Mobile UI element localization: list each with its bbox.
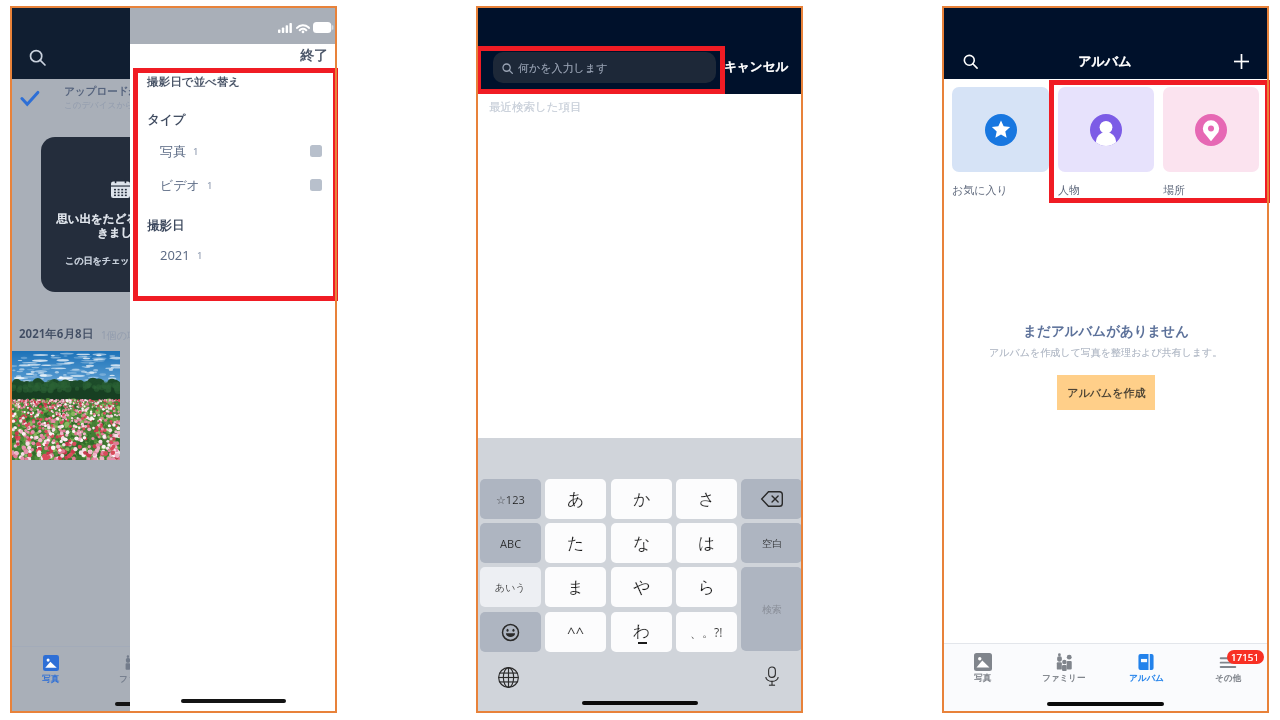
button[interactable]: な xyxy=(611,523,672,563)
button[interactable]: Search xyxy=(958,49,982,73)
staticText: は xyxy=(698,533,716,554)
button[interactable]: 場所 xyxy=(1163,87,1259,197)
staticText: タイプ xyxy=(147,112,186,128)
staticText: アップロードが完 xyxy=(64,85,150,98)
button[interactable]: か xyxy=(611,479,672,519)
button[interactable]: 空白 xyxy=(741,523,802,563)
button[interactable]: ま xyxy=(545,567,606,607)
button[interactable]: 写真 xyxy=(10,650,91,692)
button[interactable]: Backspace xyxy=(741,479,802,519)
button[interactable]: ^^ xyxy=(545,612,606,652)
staticText: 終了 xyxy=(300,47,328,65)
button[interactable]: アルバム xyxy=(1105,644,1187,689)
other: Emoji xyxy=(502,624,519,641)
button[interactable]: アルバムを作成 xyxy=(1057,375,1155,410)
button[interactable]: ファミ xyxy=(91,650,173,692)
staticText: 2021年6月8日 xyxy=(19,326,93,342)
button[interactable]: 2021 xyxy=(130,244,337,266)
button[interactable]: ビデオ xyxy=(130,174,337,196)
staticText: 写真 xyxy=(974,673,991,684)
staticText: 写真 xyxy=(160,143,186,159)
button[interactable]: 何かを入力します xyxy=(493,52,716,83)
staticText: ま xyxy=(567,577,585,598)
staticText: この日をチェックしてみま xyxy=(65,255,176,266)
button[interactable]: Photo of a cosmos flower field xyxy=(12,351,120,460)
staticText: 検索 xyxy=(762,603,782,616)
button[interactable]: さ xyxy=(676,479,737,519)
staticText: ABC xyxy=(500,536,522,551)
staticText: ^^ xyxy=(567,622,585,642)
staticText: か xyxy=(633,489,651,510)
staticText: きました xyxy=(97,226,145,240)
staticText: さ xyxy=(698,489,716,510)
button[interactable]: ら xyxy=(676,567,737,607)
button[interactable]: た xyxy=(545,523,606,563)
button[interactable]: Change keyboard xyxy=(495,664,521,690)
button[interactable]: ☆123 xyxy=(480,479,541,519)
staticText: 撮影日 xyxy=(147,218,185,234)
button[interactable]: 写真 xyxy=(942,644,1023,689)
other: Backspace xyxy=(761,491,783,507)
staticText: あいう xyxy=(495,581,526,594)
staticText: 写真 xyxy=(42,674,59,685)
staticText: 1 xyxy=(197,249,203,262)
button[interactable]: は xyxy=(676,523,737,563)
button[interactable]: アップロードが完 xyxy=(10,79,337,117)
button[interactable]: あいう xyxy=(480,567,541,607)
staticText: このデバイスから62 xyxy=(64,99,144,111)
staticText: 場所 xyxy=(1163,183,1185,197)
button[interactable]: や xyxy=(611,567,672,607)
staticText: ☆123 xyxy=(496,492,525,507)
staticText: アルバム xyxy=(1078,53,1132,69)
staticText: あ xyxy=(567,489,585,510)
staticText: た xyxy=(567,533,585,554)
staticText: 思い出をたどることがで xyxy=(56,212,185,226)
button[interactable]: Search xyxy=(24,44,51,71)
staticText: や xyxy=(633,577,651,598)
button[interactable]: キャンセル xyxy=(716,59,795,75)
staticText: その他 xyxy=(1215,673,1241,684)
button[interactable]: 人物 xyxy=(1058,87,1154,197)
staticText: 、。?! xyxy=(690,624,723,640)
staticText: 1 xyxy=(193,145,199,158)
staticText: アルバム xyxy=(1129,673,1164,684)
button[interactable]: ABC xyxy=(480,523,541,563)
button[interactable]: Emoji xyxy=(480,612,541,652)
staticText: ファミリー xyxy=(1042,673,1086,684)
button[interactable]: 検索 xyxy=(741,567,802,651)
staticText: ファミ xyxy=(119,674,146,685)
button[interactable]: 終了 xyxy=(300,47,337,65)
staticText: 最近検索した項目 xyxy=(489,100,582,114)
button[interactable]: Create album xyxy=(1229,49,1253,73)
staticText: 空白 xyxy=(762,537,782,550)
staticText: まだアルバムがありません xyxy=(1023,323,1189,340)
button[interactable]: ファミリー xyxy=(1023,644,1105,689)
button[interactable]: 写真 xyxy=(130,140,337,162)
staticText: 1個の項 xyxy=(101,328,137,342)
button[interactable]: 、。?! xyxy=(676,612,737,652)
button[interactable]: あ xyxy=(545,479,606,519)
button[interactable]: お気に入り xyxy=(952,87,1049,197)
button[interactable]: Dictation xyxy=(759,663,785,689)
staticText: ら xyxy=(698,577,716,598)
staticText: 1 xyxy=(207,179,213,192)
staticText: キャンセル xyxy=(724,59,788,75)
staticText: ビデオ xyxy=(160,177,200,193)
button[interactable]: わ xyxy=(611,612,672,652)
staticText: 2021 xyxy=(160,246,190,264)
staticText: わ xyxy=(633,621,651,642)
button[interactable]: その他 xyxy=(1187,644,1269,689)
staticText: 何かを入力します xyxy=(518,61,608,75)
staticText: 17151 xyxy=(1231,651,1260,664)
staticText: アルバムを作成 xyxy=(1067,386,1146,400)
staticText: アルバムを作成して写真を整理および共有します。 xyxy=(989,346,1223,359)
staticText: お気に入り xyxy=(952,183,1008,197)
staticText: 撮影日で並べ替え xyxy=(147,75,240,89)
button[interactable]: 思い出をたどることがで xyxy=(41,137,199,292)
staticText: な xyxy=(633,533,651,554)
staticText: 人物 xyxy=(1058,183,1080,197)
